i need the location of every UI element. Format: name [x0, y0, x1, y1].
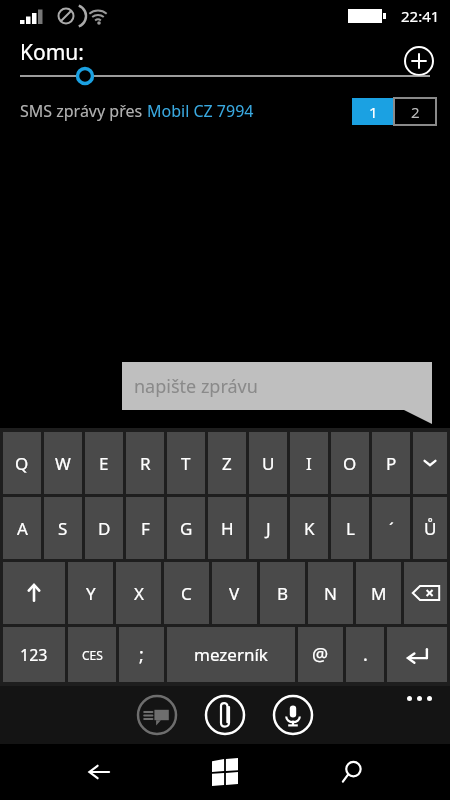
button[interactable]: CES — [68, 627, 116, 682]
button[interactable]: S — [44, 497, 82, 559]
staticText: N — [324, 582, 337, 605]
staticText: O — [343, 452, 357, 475]
button[interactable]: T — [167, 432, 205, 494]
staticText: F — [141, 517, 150, 540]
staticText: T — [181, 452, 191, 475]
staticText: H — [221, 517, 234, 540]
button[interactable]: J — [249, 497, 287, 559]
button[interactable]: L — [331, 497, 369, 559]
staticText: 123 — [20, 644, 48, 666]
staticText: K — [304, 517, 315, 540]
button[interactable]: . — [346, 627, 384, 682]
staticText: L — [346, 517, 355, 540]
button[interactable]: V — [212, 562, 257, 624]
staticText: Z — [222, 452, 232, 475]
staticText: P — [386, 452, 397, 475]
staticText: CES — [82, 647, 103, 663]
button[interactable]: Search — [324, 744, 380, 800]
button[interactable]: Hide keyboard — [413, 432, 447, 494]
button[interactable]: Attach — [203, 693, 247, 737]
button[interactable]: N — [308, 562, 353, 624]
staticText: Mobil CZ 7994 — [147, 100, 254, 122]
button[interactable]: I — [290, 432, 328, 494]
staticText: Ů — [424, 517, 437, 540]
staticText: U — [262, 452, 275, 475]
button[interactable]: mezerník — [167, 627, 295, 682]
button[interactable]: B — [260, 562, 305, 624]
staticText: napište zprávu — [134, 374, 258, 399]
button[interactable]: 123 — [3, 627, 65, 682]
button[interactable]: Z — [208, 432, 246, 494]
button[interactable]: More options — [407, 696, 432, 701]
staticText: . — [363, 642, 368, 667]
button[interactable]: SMS zprávy přes — [20, 100, 254, 122]
staticText: W — [55, 452, 71, 475]
staticText: 22:41 — [401, 6, 440, 26]
staticText: 1 — [369, 102, 378, 122]
button[interactable]: Q — [3, 432, 41, 494]
button[interactable]: H — [208, 497, 246, 559]
staticText: Y — [86, 582, 96, 605]
button[interactable]: ´ — [372, 497, 410, 559]
staticText: D — [98, 517, 111, 540]
button[interactable]: 1 — [352, 98, 394, 125]
button[interactable]: O — [331, 432, 369, 494]
button[interactable]: X — [116, 562, 161, 624]
button[interactable]: E — [85, 432, 123, 494]
button[interactable]: F — [126, 497, 164, 559]
staticText: mezerník — [194, 643, 268, 666]
staticText: ; — [139, 642, 144, 667]
staticText: A — [17, 517, 28, 540]
staticText: Komu: — [20, 38, 84, 67]
staticText: B — [277, 582, 289, 605]
staticText: Q — [15, 452, 29, 475]
button[interactable]: Ů — [413, 497, 447, 559]
button[interactable]: K — [290, 497, 328, 559]
staticText: R — [140, 452, 151, 475]
staticText: C — [181, 582, 192, 605]
staticText: E — [99, 452, 109, 475]
button[interactable]: Voice input — [271, 693, 315, 737]
staticText: M — [371, 582, 387, 605]
staticText: 2 — [411, 102, 420, 122]
button[interactable]: A — [3, 497, 41, 559]
button[interactable]: @ — [298, 627, 343, 682]
button[interactable]: P — [372, 432, 410, 494]
button[interactable]: Enter — [387, 627, 447, 682]
button[interactable]: Add recipient — [402, 44, 436, 78]
staticText: J — [266, 517, 271, 540]
staticText: X — [134, 582, 144, 605]
staticText: S — [58, 517, 68, 540]
button[interactable]: Y — [68, 562, 113, 624]
button[interactable]: G — [167, 497, 205, 559]
staticText: SMS zprávy přes — [20, 100, 147, 122]
staticText: I — [306, 452, 312, 475]
button[interactable]: M — [356, 562, 401, 624]
staticText: G — [180, 517, 193, 540]
staticText: @ — [312, 642, 329, 667]
button[interactable]: U — [249, 432, 287, 494]
button[interactable]: C — [164, 562, 209, 624]
button[interactable]: Shift — [3, 562, 65, 624]
button[interactable]: D — [85, 497, 123, 559]
button[interactable]: W — [44, 432, 82, 494]
staticText: ´ — [389, 517, 394, 540]
button[interactable]: 2 — [394, 98, 436, 125]
button[interactable]: Start — [197, 744, 253, 800]
button[interactable]: Back — [71, 744, 127, 800]
staticText: V — [229, 582, 240, 605]
button[interactable]: R — [126, 432, 164, 494]
button[interactable]: ; — [119, 627, 164, 682]
button[interactable]: Backspace — [404, 562, 447, 624]
button[interactable]: Send SMS — [135, 693, 179, 737]
